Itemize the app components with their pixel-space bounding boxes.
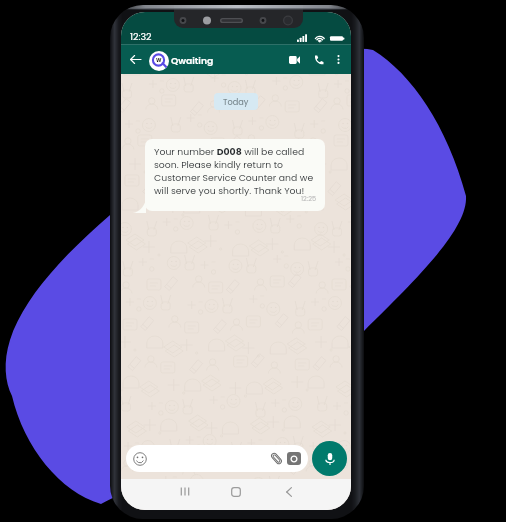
staticText: 12:32: [130, 30, 152, 43]
staticText: Qwaiting: [171, 54, 214, 67]
button[interactable]: Qwaiting profile: [149, 51, 169, 71]
staticText: Your number D008 will be called soon. Pl…: [154, 145, 317, 197]
button[interactable]: Home: [221, 479, 251, 504]
button[interactable]: Attach file: [270, 452, 283, 465]
button[interactable]: Back: [274, 479, 304, 504]
staticText: 12:25: [301, 194, 317, 203]
button[interactable]: Back: [124, 45, 147, 74]
button[interactable]: Your number D008 will be called soon. Pl…: [145, 139, 325, 211]
button[interactable]: Voice call: [307, 45, 331, 74]
button[interactable]: Emoji: [133, 452, 147, 466]
button[interactable]: Camera: [287, 452, 301, 465]
button[interactable]: Video call: [282, 45, 307, 74]
button[interactable]: Today: [214, 93, 258, 110]
staticText: W: [156, 57, 162, 64]
button[interactable]: Voice message: [312, 441, 347, 476]
staticText: Today: [223, 96, 249, 107]
button[interactable]: More options: [328, 45, 349, 74]
button[interactable]: Recent apps: [170, 479, 200, 504]
button[interactable]: Emoji: [126, 445, 308, 472]
